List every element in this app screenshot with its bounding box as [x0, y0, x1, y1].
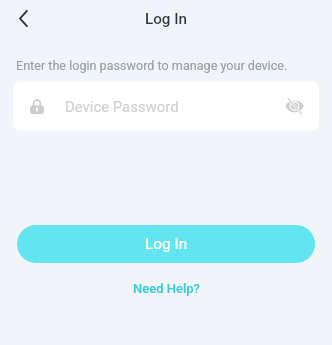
- staticText: Enter the login password to manage your …: [16, 58, 288, 73]
- button[interactable]: Show password: [282, 94, 306, 118]
- staticText: Log In: [145, 235, 188, 253]
- button[interactable]: Need Help?: [123, 275, 210, 302]
- staticText: Need Help?: [133, 281, 200, 296]
- button[interactable]: Back: [7, 2, 39, 34]
- staticText: Device Password: [65, 98, 179, 115]
- button[interactable]: Log In: [17, 225, 315, 263]
- button[interactable]: Device Password: [13, 81, 319, 131]
- staticText: Log In: [145, 10, 187, 28]
